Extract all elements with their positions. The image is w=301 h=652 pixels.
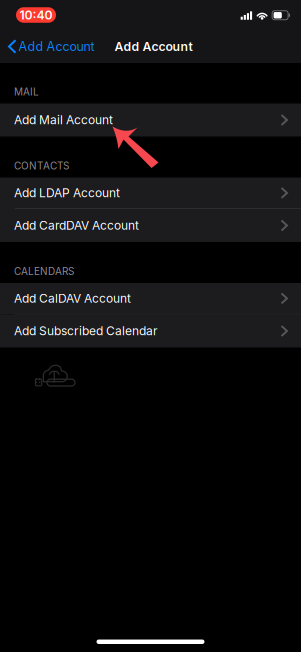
staticText: MAIL [14,86,39,98]
button[interactable]: Add Subscribed Calendar [0,314,301,347]
button[interactable]: Add Account [0,33,98,60]
button[interactable]: Add CardDAV Account [0,209,301,242]
staticText: CALENDARS [14,265,74,277]
button[interactable]: Add CalDAV Account [0,283,301,314]
staticText: Add Subscribed Calendar [14,324,158,338]
staticText: Add LDAP Account [14,186,120,200]
staticText: 10:40 [19,8,52,22]
staticText: CONTACTS [14,160,69,172]
staticText: Add CalDAV Account [14,291,131,306]
button[interactable]: Add Mail Account [0,103,301,136]
staticText: Add Account [18,39,94,54]
staticText: Add Mail Account [14,113,113,127]
button[interactable]: Add LDAP Account [0,177,301,209]
staticText: Add Account [114,39,192,54]
staticText: Add CardDAV Account [14,218,139,233]
